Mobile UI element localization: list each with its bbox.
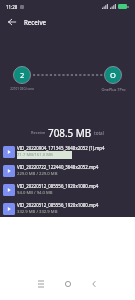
staticText: 229.0 MB / 229.0 MB	[17, 171, 58, 177]
button[interactable]: VID_20220904_171345_3648x2052 (1).mp4	[0, 142, 135, 161]
staticText: O	[110, 70, 116, 80]
button[interactable]: Recent apps	[30, 273, 52, 295]
staticText: 22101 02C/r.uno	[10, 87, 34, 91]
button[interactable]: Home	[57, 273, 79, 295]
staticText: VID_20220722_122440_3648x2052.mp4	[17, 164, 99, 170]
button[interactable]: Back	[0, 13, 24, 31]
staticText: 71.7 MB/161.0 MB	[17, 152, 53, 158]
staticText: 708.5 MB	[48, 126, 92, 139]
staticText: Receive	[31, 130, 46, 135]
staticText: 11:28	[6, 4, 18, 10]
staticText: 2	[20, 70, 25, 80]
button[interactable]: Back	[83, 273, 105, 295]
staticText: VID_20220512_085556_1920x1080.mp4	[17, 202, 99, 208]
staticText: 332.9 MB / 332.9 MB	[17, 209, 58, 215]
button[interactable]: VID_20220512_085556_1920x1080.mp4	[0, 199, 135, 218]
button[interactable]: O	[95, 66, 131, 92]
button[interactable]: VID_20220722_122440_3648x2052.mp4	[0, 161, 135, 180]
button[interactable]: VID_20220512_085556_1920x1080.mp4	[0, 180, 135, 199]
staticText: OnePlus 7Pro	[101, 87, 126, 92]
staticText: total	[94, 130, 104, 136]
staticText: 94.0 MB / 94.0 MB	[17, 190, 53, 196]
staticText: VID_20220512_085556_1920x1080.mp4	[17, 183, 99, 189]
button[interactable]: 2	[4, 66, 40, 91]
staticText: VID_20220904_171345_3648x2052 (1).mp4	[17, 145, 105, 151]
staticText: Receive	[24, 18, 47, 26]
